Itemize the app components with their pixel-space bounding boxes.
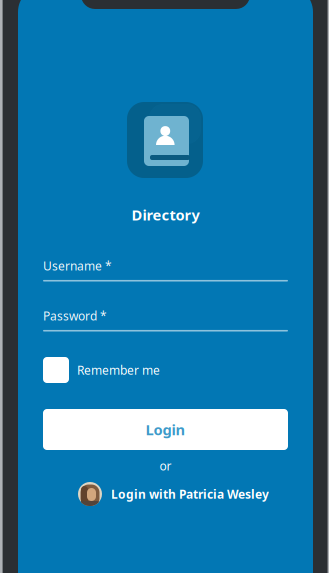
staticText: Directory — [131, 205, 199, 224]
button[interactable]: Login with Patricia Wesley — [78, 482, 269, 506]
staticText: Remember me — [77, 362, 160, 378]
staticText: Username * — [43, 258, 112, 274]
staticText: Login — [145, 420, 185, 439]
button[interactable]: Remember me — [43, 357, 288, 383]
button[interactable]: Login — [43, 409, 288, 450]
staticText: Login with Patricia Wesley — [111, 486, 269, 502]
staticText: or — [159, 458, 171, 474]
staticText: Password * — [43, 308, 107, 324]
